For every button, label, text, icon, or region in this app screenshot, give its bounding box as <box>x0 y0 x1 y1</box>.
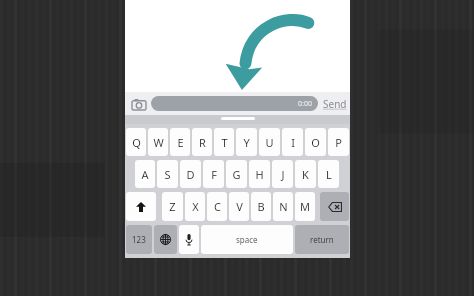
button[interactable]: Change keyboard language <box>154 225 177 254</box>
staticText: Send <box>323 97 347 111</box>
staticText: T <box>221 135 228 150</box>
staticText: H <box>255 167 264 182</box>
staticText: A <box>141 167 149 182</box>
staticText: M <box>300 199 310 214</box>
staticText: F <box>211 167 217 182</box>
staticText: return <box>310 234 334 245</box>
button[interactable]: M <box>295 192 315 221</box>
button[interactable]: A <box>135 160 155 188</box>
button[interactable]: 0:00 <box>151 96 318 111</box>
button[interactable]: 123 <box>126 225 152 254</box>
staticText: N <box>279 199 288 214</box>
button[interactable]: return <box>295 225 349 254</box>
button[interactable]: W <box>148 128 168 156</box>
button[interactable]: F <box>203 160 224 188</box>
button[interactable]: Send <box>323 97 347 111</box>
button[interactable]: K <box>295 160 316 188</box>
button[interactable]: Camera <box>129 94 149 114</box>
staticText: P <box>335 135 342 150</box>
staticText: Z <box>169 199 176 214</box>
button[interactable]: X <box>185 192 205 221</box>
staticText: K <box>302 167 309 182</box>
button[interactable]: Dictate <box>179 225 199 254</box>
button[interactable]: T <box>214 128 234 156</box>
staticText: Q <box>132 135 141 150</box>
staticText: O <box>311 135 320 150</box>
button[interactable]: P <box>328 128 349 156</box>
button[interactable]: space <box>201 225 293 254</box>
button[interactable]: O <box>305 128 326 156</box>
staticText: J <box>281 167 285 182</box>
staticText: X <box>192 199 199 214</box>
button[interactable]: H <box>249 160 270 188</box>
staticText: E <box>177 135 184 150</box>
button[interactable]: D <box>180 160 201 188</box>
button[interactable]: Delete <box>320 192 349 221</box>
button[interactable]: V <box>229 192 249 221</box>
button[interactable]: I <box>282 128 303 156</box>
button[interactable]: J <box>272 160 293 188</box>
button[interactable]: B <box>251 192 271 221</box>
staticText: 0:00 <box>298 99 312 109</box>
button[interactable]: U <box>259 128 280 156</box>
button[interactable]: N <box>273 192 293 221</box>
staticText: L <box>326 167 332 182</box>
button[interactable]: R <box>192 128 212 156</box>
staticText: I <box>291 135 295 150</box>
staticText: G <box>232 167 241 182</box>
button[interactable]: Q <box>126 128 146 156</box>
button[interactable]: E <box>170 128 190 156</box>
staticText: C <box>214 199 221 214</box>
button[interactable]: Y <box>236 128 257 156</box>
button[interactable]: Shift <box>126 192 156 221</box>
button[interactable]: C <box>207 192 227 221</box>
staticText: 123 <box>132 234 146 245</box>
staticText: space <box>236 234 258 245</box>
staticText: U <box>265 135 274 150</box>
staticText: R <box>199 135 206 150</box>
button[interactable]: Z <box>162 192 183 221</box>
staticText: V <box>236 199 243 214</box>
staticText: B <box>257 199 265 214</box>
staticText: D <box>186 167 195 182</box>
staticText: S <box>164 167 171 182</box>
staticText: W <box>153 135 164 150</box>
staticText: Y <box>243 135 250 150</box>
button[interactable]: G <box>226 160 247 188</box>
button[interactable]: L <box>318 160 339 188</box>
button[interactable]: S <box>157 160 178 188</box>
